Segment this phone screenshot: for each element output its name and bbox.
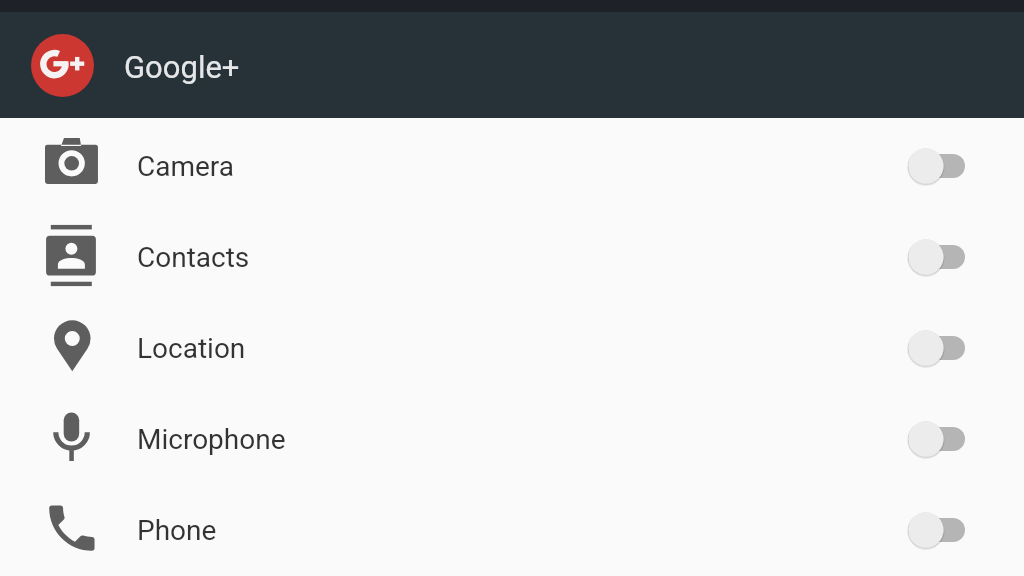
button[interactable]: Permission toggle, off bbox=[908, 327, 965, 371]
staticText: Google+ bbox=[124, 49, 240, 85]
button[interactable]: Permission toggle, off bbox=[908, 418, 965, 462]
button[interactable]: Permission toggle, off bbox=[908, 236, 965, 280]
staticText: Contacts bbox=[137, 241, 250, 274]
staticText: Phone bbox=[137, 514, 217, 547]
button[interactable]: Phone bbox=[0, 485, 1024, 576]
button[interactable]: Contacts bbox=[0, 212, 1024, 303]
button[interactable]: Permission toggle, off bbox=[908, 509, 965, 553]
button[interactable]: Location bbox=[0, 303, 1024, 394]
staticText: Camera bbox=[137, 150, 235, 183]
button[interactable]: Microphone bbox=[0, 394, 1024, 485]
button[interactable]: Camera bbox=[0, 121, 1024, 212]
button[interactable]: Permission toggle, off bbox=[908, 145, 965, 189]
staticText: Microphone bbox=[137, 423, 286, 456]
staticText: Location bbox=[137, 332, 246, 365]
